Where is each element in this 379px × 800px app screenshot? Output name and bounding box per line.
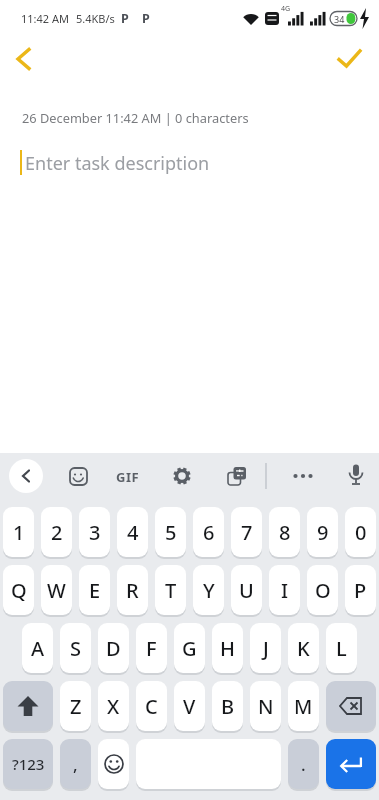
button[interactable]: T (155, 565, 186, 615)
button[interactable]: Y (193, 565, 224, 615)
button[interactable] (98, 739, 129, 789)
staticText: W (47, 577, 66, 604)
staticText: Q (11, 577, 27, 604)
button[interactable]: P (345, 565, 376, 615)
button[interactable] (6, 45, 40, 73)
button[interactable]: 0 (345, 507, 376, 557)
staticText: GIF (116, 468, 140, 486)
staticText: 0 (355, 519, 367, 546)
button[interactable]: W (41, 565, 72, 615)
button[interactable]: O (307, 565, 338, 615)
staticText: C (145, 693, 158, 720)
staticText: 5.4KB/s (76, 11, 115, 26)
button[interactable]: I (269, 565, 300, 615)
button[interactable]: 2 (41, 507, 72, 557)
button[interactable]: U (231, 565, 262, 615)
button[interactable]: H (212, 623, 243, 673)
button[interactable] (334, 44, 364, 72)
staticText: J (263, 635, 269, 662)
button[interactable]: G (174, 623, 205, 673)
staticText: U (239, 577, 254, 604)
button[interactable]: V (174, 681, 205, 731)
staticText: V (183, 693, 196, 720)
staticText: I (281, 577, 289, 604)
staticText: Z (70, 693, 82, 720)
staticText: O (315, 577, 331, 604)
staticText: X (107, 693, 120, 720)
button[interactable]: C (136, 681, 167, 731)
staticText: S (70, 635, 81, 662)
staticText: H (220, 635, 235, 662)
staticText: T (165, 577, 177, 604)
button[interactable] (66, 464, 90, 488)
staticText: Y (203, 577, 215, 604)
button[interactable]: 9 (307, 507, 338, 557)
staticText: K (297, 635, 310, 662)
button[interactable]: D (98, 623, 129, 673)
button[interactable]: R (117, 565, 148, 615)
staticText: 6 (203, 519, 215, 546)
staticText: D (106, 635, 121, 662)
button[interactable]: F (136, 623, 167, 673)
button[interactable]: 1 (3, 507, 34, 557)
button[interactable]: . (288, 739, 319, 789)
staticText: A (31, 635, 45, 662)
staticText: Enter task description (25, 151, 210, 176)
button[interactable]: S (60, 623, 91, 673)
staticText: ?123 (12, 754, 45, 774)
staticText: B (221, 693, 235, 720)
staticText: M (294, 693, 313, 720)
button[interactable]: N (250, 681, 281, 731)
button[interactable] (225, 464, 249, 488)
staticText: 4 (127, 519, 139, 546)
staticText: 4G (281, 4, 291, 14)
button[interactable]: L (326, 623, 357, 673)
staticText: 8 (279, 519, 291, 546)
staticText: L (336, 635, 347, 662)
staticText: 9 (317, 519, 329, 546)
button[interactable]: X (98, 681, 129, 731)
staticText: 1 (13, 519, 25, 546)
button[interactable]: 8 (269, 507, 300, 557)
button[interactable]: , (60, 739, 91, 789)
button[interactable] (9, 459, 43, 493)
staticText: 5 (165, 519, 177, 546)
staticText: R (126, 577, 139, 604)
button[interactable] (291, 464, 315, 488)
button[interactable]: J (250, 623, 281, 673)
button[interactable]: ?123 (3, 739, 53, 789)
staticText: 11:42 AM (21, 11, 69, 26)
staticText: , (73, 753, 78, 776)
button[interactable]: K (288, 623, 319, 673)
staticText: 26 December 11:42 AM | 0 characters (22, 109, 249, 126)
staticText: . (301, 753, 306, 776)
button[interactable]: 3 (79, 507, 110, 557)
button[interactable]: 4 (117, 507, 148, 557)
button[interactable] (326, 739, 376, 789)
staticText: 2 (51, 519, 63, 546)
button[interactable]: Q (3, 565, 34, 615)
staticText: G (182, 635, 197, 662)
button[interactable] (3, 681, 53, 731)
button[interactable] (326, 681, 376, 731)
staticText: F (146, 635, 157, 662)
staticText: 34 (334, 13, 345, 25)
staticText: P (354, 577, 367, 604)
button[interactable]: M (288, 681, 319, 731)
button[interactable]: E (79, 565, 110, 615)
staticText: 3 (89, 519, 101, 546)
staticText: N (258, 693, 274, 720)
button[interactable]: 5 (155, 507, 186, 557)
button[interactable]: 7 (231, 507, 262, 557)
staticText: 7 (241, 519, 253, 546)
button[interactable]: 6 (193, 507, 224, 557)
button[interactable]: Z (60, 681, 91, 731)
button[interactable] (170, 464, 194, 488)
staticText: E (89, 577, 101, 604)
button[interactable]: A (22, 623, 53, 673)
staticText: P (142, 10, 150, 27)
staticText: P (121, 10, 129, 27)
button[interactable]: B (212, 681, 243, 731)
button[interactable] (344, 463, 368, 487)
